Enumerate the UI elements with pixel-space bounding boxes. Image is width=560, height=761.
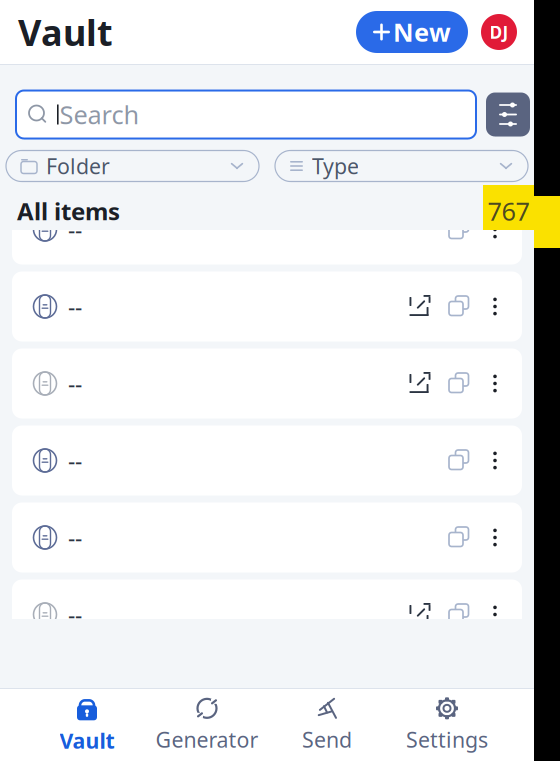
button[interactable]: Send <box>267 694 387 756</box>
button[interactable]: -- <box>12 579 522 649</box>
button[interactable]: New <box>356 11 468 53</box>
staticText: Folder <box>46 152 110 180</box>
button[interactable]: -- <box>12 502 522 572</box>
button[interactable]: Settings <box>387 694 507 756</box>
button[interactable]: -- <box>12 194 522 264</box>
staticText: -- <box>68 214 82 244</box>
staticText: All items <box>17 195 120 227</box>
staticText: -- <box>68 599 82 629</box>
button[interactable]: Type <box>275 150 528 181</box>
staticText: Settings <box>406 725 488 754</box>
staticText: Generator <box>155 725 258 754</box>
button[interactable]: Account <box>481 14 517 50</box>
staticText: -- <box>68 291 82 321</box>
staticText: Vault <box>59 726 114 755</box>
button[interactable]: Filter options <box>486 92 530 136</box>
staticText: Send <box>302 725 352 754</box>
button[interactable]: -- <box>12 348 522 418</box>
staticText: DJ <box>489 20 508 43</box>
staticText: 767 <box>487 194 529 228</box>
staticText: -- <box>68 445 82 475</box>
button[interactable]: Generator <box>147 694 267 756</box>
staticText: Search <box>60 98 140 131</box>
button[interactable]: -- <box>12 425 522 495</box>
staticText: New <box>393 15 451 49</box>
staticText: -- <box>68 522 82 552</box>
button[interactable]: Vault <box>27 694 147 756</box>
staticText: -- <box>68 368 82 398</box>
staticText: Vault <box>18 8 113 56</box>
button[interactable]: Folder <box>6 150 259 181</box>
button[interactable]: -- <box>12 271 522 341</box>
staticText: Type <box>312 152 359 180</box>
